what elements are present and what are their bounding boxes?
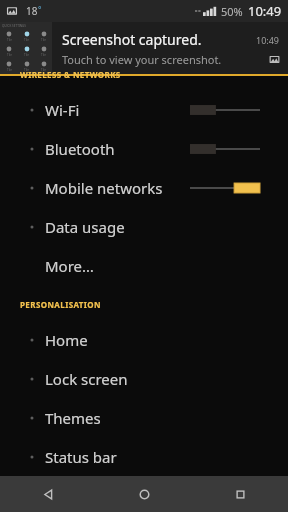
staticText: Data usage [45,217,260,237]
button[interactable]: Recents [192,476,288,512]
staticText: 18 [26,4,38,18]
staticText: WIRELESS & NETWORKS [20,69,121,80]
staticText: ° [38,4,42,15]
button[interactable]: Lock screen [0,359,288,398]
button[interactable]: Off [190,102,260,118]
staticText: Touch to view your screenshot. [62,52,269,67]
button[interactable]: Screenshot captured. [52,22,288,74]
staticText: Tile [41,38,46,42]
button[interactable]: Themes [0,398,288,437]
button[interactable]: Off [190,141,260,157]
staticText: Tile [41,68,46,72]
staticText: Tile [24,53,29,57]
staticText: 10:49 [248,2,282,20]
staticText: Home [45,330,260,350]
staticText: More… [45,256,260,276]
staticText: Themes [45,408,260,428]
staticText: QUICK SETTINGS [2,24,26,28]
button[interactable]: Home [96,476,192,512]
staticText: Wi-Fi [45,100,190,120]
button[interactable]: Wi-Fi [0,90,288,129]
staticText: Tile [7,68,12,72]
staticText: 10:49 [256,34,280,46]
staticText: Screenshot captured. [62,30,256,49]
button[interactable]: Mobile networks [0,168,288,207]
button[interactable]: Quick settings [0,22,52,74]
button[interactable]: Back [0,476,96,512]
staticText: PERSONALISATION [20,299,101,310]
staticText: Lock screen [45,369,260,389]
button[interactable]: On [190,180,260,196]
staticText: Tile [24,68,29,72]
staticText: Tile [7,53,12,57]
button[interactable]: Data usage [0,207,288,246]
button[interactable]: More… [0,246,288,285]
staticText: Mobile networks [45,178,190,198]
staticText: Status bar [45,447,260,467]
staticText: 50% [221,4,243,19]
staticText: Tile [7,38,12,42]
button[interactable]: Bluetooth [0,129,288,168]
button[interactable]: Home [0,320,288,359]
staticText: Tile [41,53,46,57]
staticText: Tile [24,38,29,42]
button[interactable]: Status bar [0,437,288,476]
staticText: Bluetooth [45,139,190,159]
